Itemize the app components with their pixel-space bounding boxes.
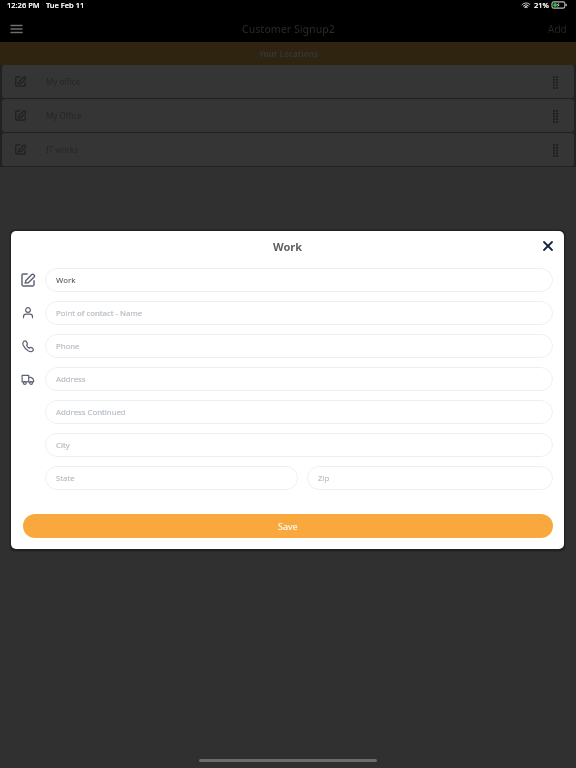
staticText: City bbox=[56, 440, 70, 451]
staticText: Your Locations bbox=[259, 48, 318, 59]
staticText: IT works bbox=[46, 144, 78, 155]
staticText: My Office bbox=[46, 110, 82, 121]
staticText: Address Continued bbox=[56, 407, 126, 418]
button[interactable]: Close dialog bbox=[536, 234, 559, 257]
staticText: Add bbox=[548, 22, 567, 36]
button[interactable]: Add bbox=[539, 18, 576, 40]
button[interactable]: State bbox=[45, 466, 298, 490]
staticText: Work bbox=[273, 239, 303, 254]
button[interactable]: Work bbox=[45, 268, 553, 292]
button[interactable]: Zip bbox=[307, 466, 553, 490]
button[interactable]: Open navigation menu bbox=[5, 18, 27, 40]
staticText: Save bbox=[278, 520, 298, 532]
staticText: Tue Feb 11 bbox=[46, 0, 85, 10]
staticText: Point of contact - Name bbox=[56, 308, 143, 319]
staticText: 12:26 PM bbox=[7, 0, 40, 10]
button[interactable]: Reorder item bbox=[543, 104, 567, 128]
staticText: Zip bbox=[318, 473, 330, 484]
staticText: My office bbox=[46, 76, 81, 87]
button[interactable]: Reorder item bbox=[543, 70, 567, 94]
button[interactable]: Reorder item bbox=[543, 138, 567, 162]
button[interactable]: Point of contact - Name bbox=[45, 301, 553, 325]
button[interactable]: City bbox=[45, 433, 553, 457]
staticText: 21% bbox=[534, 0, 549, 10]
staticText: State bbox=[56, 473, 75, 484]
button[interactable]: Save bbox=[23, 514, 553, 538]
staticText: Work bbox=[56, 275, 76, 286]
button[interactable]: Address Continued bbox=[45, 400, 553, 424]
staticText: Phone bbox=[56, 341, 80, 352]
staticText: Address bbox=[56, 374, 86, 385]
button[interactable]: Address bbox=[45, 367, 553, 391]
staticText: Customer Signup2 bbox=[242, 22, 335, 36]
button[interactable]: Phone bbox=[45, 334, 553, 358]
